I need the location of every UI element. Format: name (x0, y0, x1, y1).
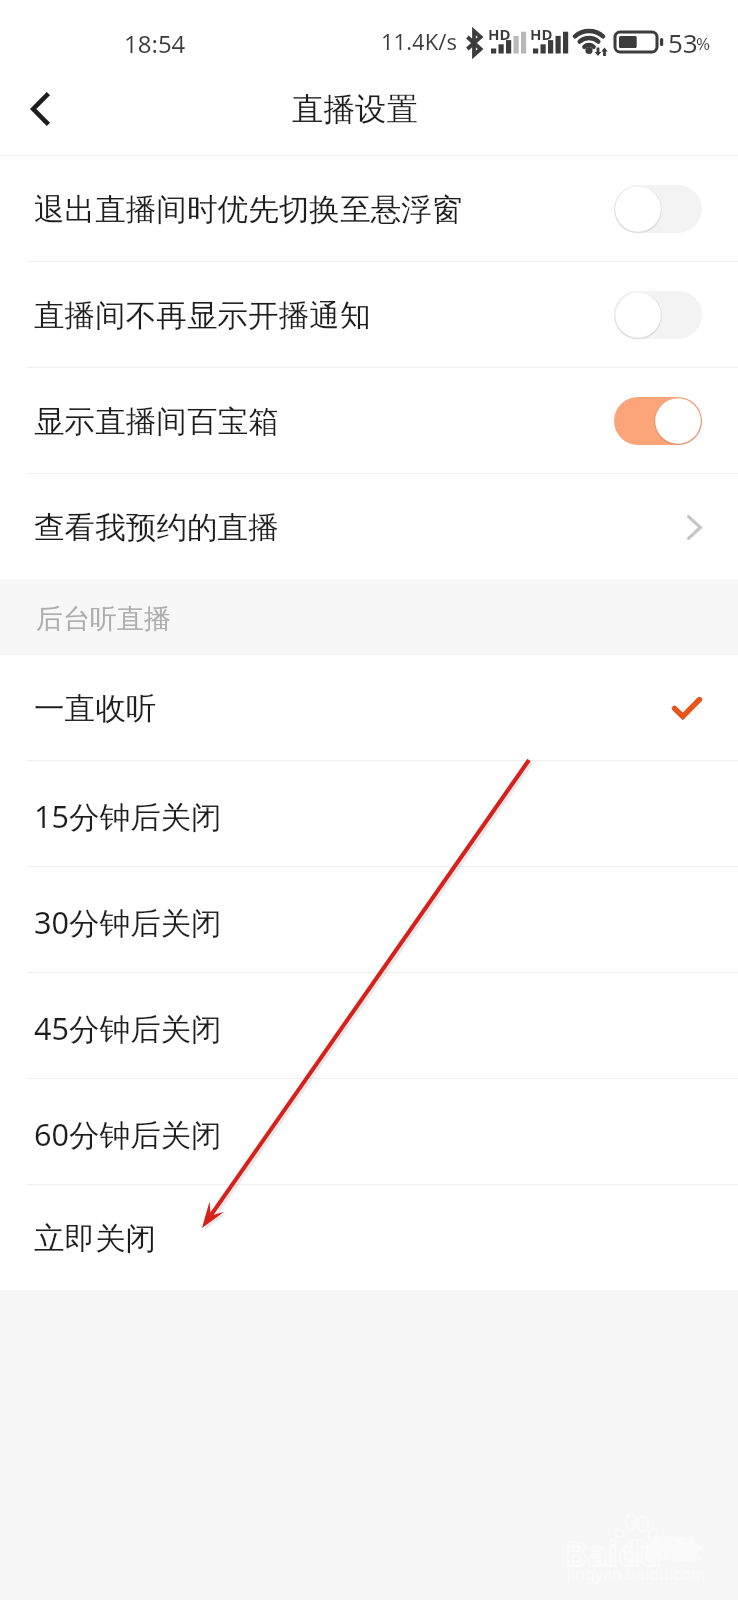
staticText: 立即关闭 (34, 1220, 157, 1259)
staticText: 查看我预约的直播 (34, 509, 279, 548)
staticText: 显示直播间百宝箱 (34, 403, 279, 442)
staticText: 30分钟后关闭 (34, 901, 222, 943)
staticText: 11.4K/s (381, 26, 457, 56)
button[interactable]: 显示直播间百宝箱 (0, 368, 738, 473)
staticText: 60分钟后关闭 (34, 1113, 222, 1155)
staticText: 18:54 (124, 27, 186, 60)
staticText: 直播设置 (292, 90, 418, 130)
button[interactable]: 退出直播间时优先切换至悬浮窗 (0, 156, 738, 261)
staticText: HD (488, 24, 511, 44)
staticText: 53 (668, 25, 698, 60)
button[interactable]: 直播间不再显示开播通知 (0, 262, 738, 367)
staticText: 一直收听 (34, 690, 157, 729)
staticText: HD (530, 24, 553, 44)
staticText: 45分钟后关闭 (34, 1007, 222, 1049)
button[interactable]: 60分钟后关闭 (0, 1079, 738, 1184)
button[interactable]: 立即关闭 (0, 1185, 738, 1290)
staticText: 15分钟后关闭 (34, 795, 222, 837)
button[interactable]: Back (0, 74, 80, 154)
button[interactable]: 查看我预约的直播 (0, 474, 738, 579)
button[interactable]: 一直收听 (0, 655, 738, 760)
button[interactable]: 30分钟后关闭 (0, 867, 738, 972)
staticText: 退出直播间时优先切换至悬浮窗 (34, 191, 463, 230)
button[interactable]: 15分钟后关闭 (0, 761, 738, 866)
staticText: 后台听直播 (36, 602, 171, 636)
button[interactable]: 45分钟后关闭 (0, 973, 738, 1078)
staticText: 直播间不再显示开播通知 (34, 297, 371, 336)
staticText: % (696, 32, 711, 55)
